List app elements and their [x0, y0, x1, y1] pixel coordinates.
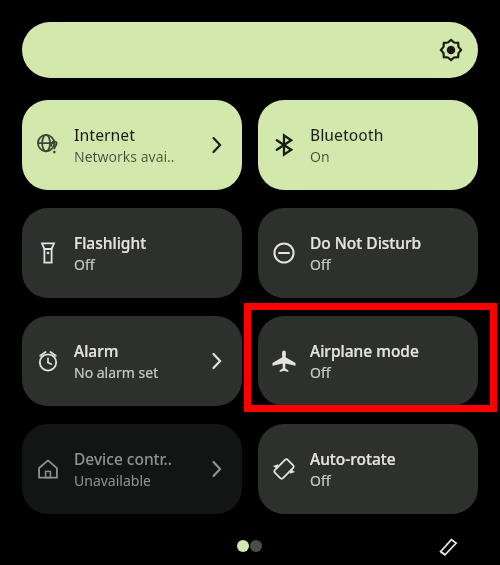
staticText: Alarm	[74, 340, 119, 361]
button[interactable]: Edit tiles	[431, 528, 467, 564]
button[interactable]: Airplane mode	[258, 316, 478, 406]
staticText: Off	[310, 255, 331, 274]
button[interactable]: Flashlight	[22, 208, 242, 298]
staticText: On	[310, 147, 330, 166]
button[interactable]: Internet	[22, 100, 242, 190]
button[interactable]: Alarm	[22, 316, 242, 406]
button[interactable]: Bluetooth	[258, 100, 478, 190]
staticText: Bluetooth	[310, 124, 384, 145]
staticText: Do Not Disturb	[310, 232, 422, 253]
staticText: Unavailable	[74, 471, 151, 490]
staticText: Internet	[74, 124, 136, 145]
button[interactable]: Auto-rotate	[258, 424, 478, 514]
staticText: Off	[310, 363, 331, 382]
staticText: Off	[310, 471, 331, 490]
staticText: Auto-rotate	[310, 448, 396, 469]
staticText: Airplane mode	[310, 340, 419, 361]
staticText: Device contr..	[74, 448, 173, 469]
staticText: Networks avai..	[74, 147, 175, 166]
staticText: No alarm set	[74, 363, 159, 382]
staticText: Flashlight	[74, 232, 147, 253]
button[interactable]: Brightness	[22, 22, 478, 78]
staticText: Off	[74, 255, 95, 274]
button[interactable]: Do Not Disturb	[258, 208, 478, 298]
button[interactable]: Device contr..	[22, 424, 242, 514]
